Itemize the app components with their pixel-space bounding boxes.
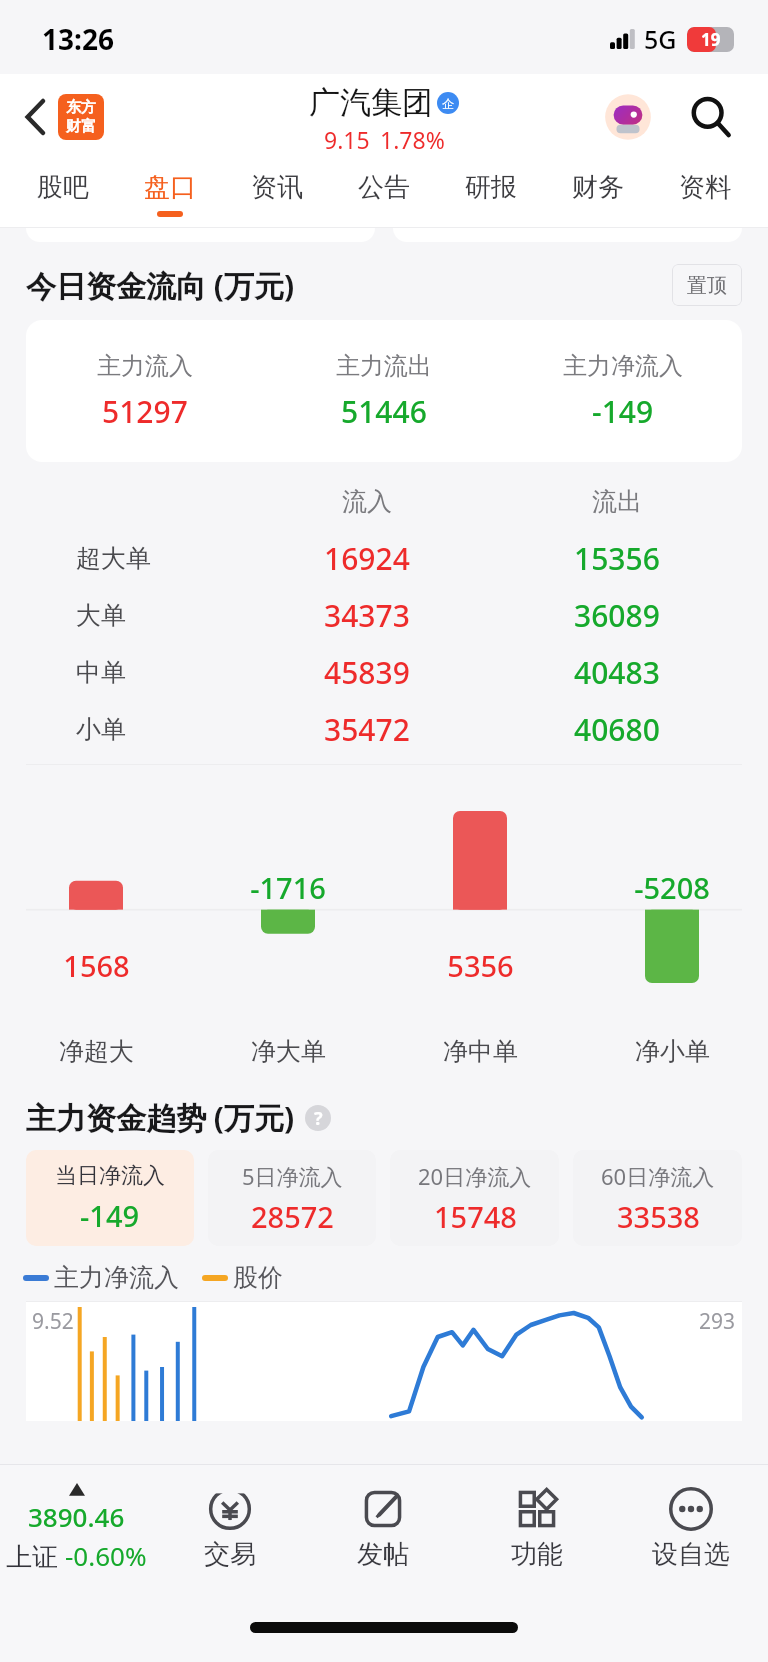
button[interactable]: Help <box>305 1105 331 1131</box>
staticText: 28572 <box>251 1197 334 1236</box>
staticText: -149 <box>80 1196 140 1235</box>
staticText: 中单 <box>76 657 126 688</box>
staticText: 13:26 <box>42 20 114 58</box>
button[interactable]: 资讯 <box>223 160 330 228</box>
staticText: 1568 <box>63 946 130 985</box>
staticText: 股吧 <box>37 171 89 204</box>
button[interactable]: 交易 <box>153 1464 306 1592</box>
staticText: 20日净流入 <box>418 1161 532 1191</box>
staticText: 企 <box>442 96 454 111</box>
staticText: 广汽集团 <box>309 83 433 122</box>
staticText: -1716 <box>250 868 326 907</box>
staticText: 大单 <box>76 600 126 631</box>
button[interactable]: 公告 <box>330 160 437 228</box>
staticText: 资料 <box>679 171 731 204</box>
button[interactable]: 设自选 <box>614 1464 768 1592</box>
staticText: 股价 <box>233 1262 283 1293</box>
button[interactable]: 大单 <box>26 587 742 644</box>
button[interactable]: 小单 <box>26 701 742 758</box>
staticText: 当日净流入 <box>55 1162 165 1190</box>
button[interactable]: 研报 <box>437 160 544 228</box>
staticText: -0.60% <box>65 1538 147 1573</box>
button[interactable]: 主力流入 <box>26 320 742 462</box>
staticText: 财务 <box>572 171 624 204</box>
button[interactable]: 5日净流入 <box>208 1150 376 1246</box>
button[interactable]: Search <box>680 86 742 148</box>
staticText: 5日净流入 <box>242 1161 343 1191</box>
staticText: -5208 <box>634 868 710 907</box>
staticText: -149 <box>592 391 654 432</box>
staticText: 净大单 <box>251 1036 326 1067</box>
staticText: 40483 <box>574 652 660 693</box>
staticText: ? <box>314 1106 323 1131</box>
staticText: 35472 <box>324 709 410 750</box>
staticText: 19 <box>701 28 721 51</box>
staticText: 财富 <box>66 117 96 136</box>
button[interactable]: 3890.46 <box>0 1464 153 1592</box>
staticText: 主力净流入 <box>54 1262 179 1293</box>
button[interactable]: 资料 <box>651 160 758 228</box>
staticText: 净小单 <box>635 1036 710 1067</box>
button[interactable]: 置顶 <box>672 264 742 306</box>
staticText: 15356 <box>574 538 660 579</box>
staticText: 研报 <box>465 171 517 204</box>
staticText: 40680 <box>574 709 660 750</box>
button[interactable]: 当日净流入 <box>26 1150 194 1246</box>
button[interactable]: 盘口 <box>116 160 223 228</box>
button[interactable]: East Money logo <box>58 94 104 140</box>
button[interactable]: 发帖 <box>306 1464 460 1592</box>
staticText: 主力流出 <box>336 351 432 381</box>
staticText: 主力净流入 <box>563 351 683 381</box>
button[interactable]: 超大单 <box>26 530 742 587</box>
staticText: 16924 <box>324 538 410 579</box>
staticText: 交易 <box>204 1538 256 1571</box>
button[interactable]: Back <box>10 91 62 143</box>
staticText: 3890.46 <box>28 1499 125 1534</box>
staticText: 资讯 <box>251 171 303 204</box>
staticText: 置顶 <box>687 273 727 298</box>
staticText: 功能 <box>511 1538 563 1571</box>
staticText: 设自选 <box>652 1538 730 1571</box>
staticText: 15748 <box>434 1197 517 1236</box>
staticText: 发帖 <box>357 1538 409 1571</box>
staticText: 293 <box>699 1307 736 1336</box>
staticText: 60日净流入 <box>601 1161 715 1191</box>
button[interactable]: 60日净流入 <box>573 1150 742 1246</box>
staticText: 流出 <box>592 486 642 517</box>
button[interactable]: 中单 <box>26 644 742 701</box>
staticText: 今日资金流向 (万元) <box>26 265 295 306</box>
staticText: 净中单 <box>443 1036 518 1067</box>
staticText: 51297 <box>102 391 188 432</box>
staticText: 流入 <box>342 486 392 517</box>
staticText: 主力流入 <box>97 351 193 381</box>
button[interactable]: 20日净流入 <box>390 1150 559 1246</box>
staticText: 45839 <box>324 652 410 693</box>
staticText: 小单 <box>76 714 126 745</box>
button[interactable]: Assistant <box>600 89 656 145</box>
staticText: 5356 <box>447 946 514 985</box>
staticText: 超大单 <box>76 543 151 574</box>
button[interactable]: 财务 <box>544 160 651 228</box>
button[interactable]: 股吧 <box>10 160 116 228</box>
staticText: 33538 <box>617 1197 700 1236</box>
staticText: 51446 <box>341 391 427 432</box>
staticText: 公告 <box>358 171 410 204</box>
staticText: 9.52 <box>32 1307 74 1336</box>
staticText: 9.15 <box>324 124 370 155</box>
staticText: 上证 <box>6 1538 65 1574</box>
staticText: 1.78% <box>380 124 445 155</box>
staticText: 主力资金趋势 (万元) <box>26 1097 295 1138</box>
staticText: 盘口 <box>144 171 196 204</box>
staticText: 34373 <box>324 595 410 636</box>
staticText: 东方 <box>66 98 96 117</box>
staticText: 5G <box>644 22 677 56</box>
staticText: 36089 <box>574 595 660 636</box>
staticText: 净超大 <box>59 1036 134 1067</box>
button[interactable]: 功能 <box>460 1464 614 1592</box>
